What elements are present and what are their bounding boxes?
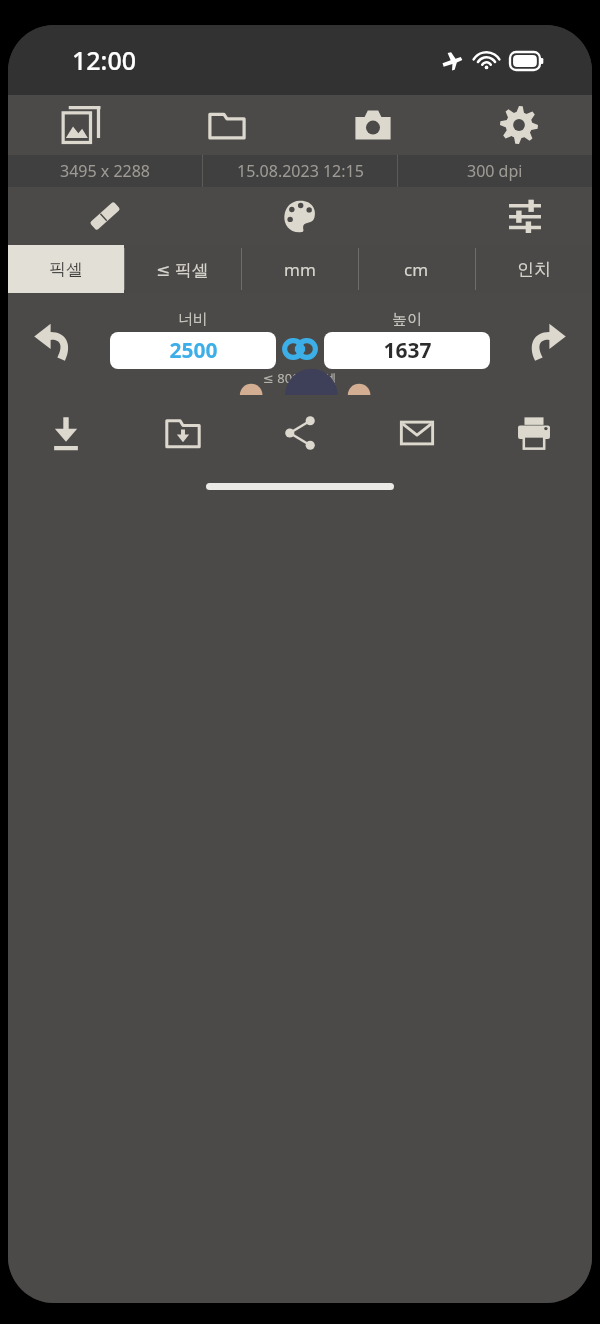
button[interactable]: ≤ 픽셀	[124, 245, 241, 293]
staticText: ≤ 8000 픽셀	[263, 369, 337, 387]
staticText: 너비	[178, 310, 208, 329]
button[interactable]: Settings	[446, 95, 592, 155]
staticText: 인치	[517, 259, 551, 280]
button[interactable]: Save	[8, 395, 124, 471]
button[interactable]: Save to folder	[124, 395, 241, 471]
button[interactable]: Print	[475, 395, 592, 471]
button[interactable]: Palette	[202, 187, 397, 245]
button[interactable]: 픽셀	[8, 245, 124, 293]
button[interactable]: Share	[241, 395, 358, 471]
button[interactable]: Email	[358, 395, 475, 471]
staticText: mm	[284, 258, 316, 281]
staticText: 12:00	[72, 43, 137, 77]
staticText: 1637	[383, 336, 432, 365]
staticText: 3495 x 2288	[60, 160, 151, 182]
staticText: 높이	[392, 310, 422, 329]
button[interactable]: 인치	[475, 245, 592, 293]
staticText: ≤ 픽셀	[156, 258, 209, 281]
staticText: 15.08.2023 12:15	[237, 160, 364, 182]
staticText: 픽셀	[49, 259, 83, 280]
button[interactable]: Camera	[300, 95, 446, 155]
staticText: 300 dpi	[467, 160, 523, 182]
button[interactable]: mm	[241, 245, 358, 293]
staticText: 2500	[169, 336, 218, 365]
button[interactable]: Redo	[518, 316, 574, 372]
button[interactable]: 2500	[110, 332, 276, 369]
button[interactable]: 1637	[324, 332, 490, 369]
button[interactable]: Gallery	[8, 95, 154, 155]
button[interactable]: Undo	[26, 316, 82, 372]
button[interactable]: cm	[358, 245, 475, 293]
staticText: cm	[404, 258, 429, 281]
button[interactable]: Folder	[154, 95, 300, 155]
button[interactable]: Link aspect ratio	[276, 325, 324, 373]
button[interactable]: Eraser	[8, 187, 202, 245]
button[interactable]: Adjust	[397, 187, 592, 245]
